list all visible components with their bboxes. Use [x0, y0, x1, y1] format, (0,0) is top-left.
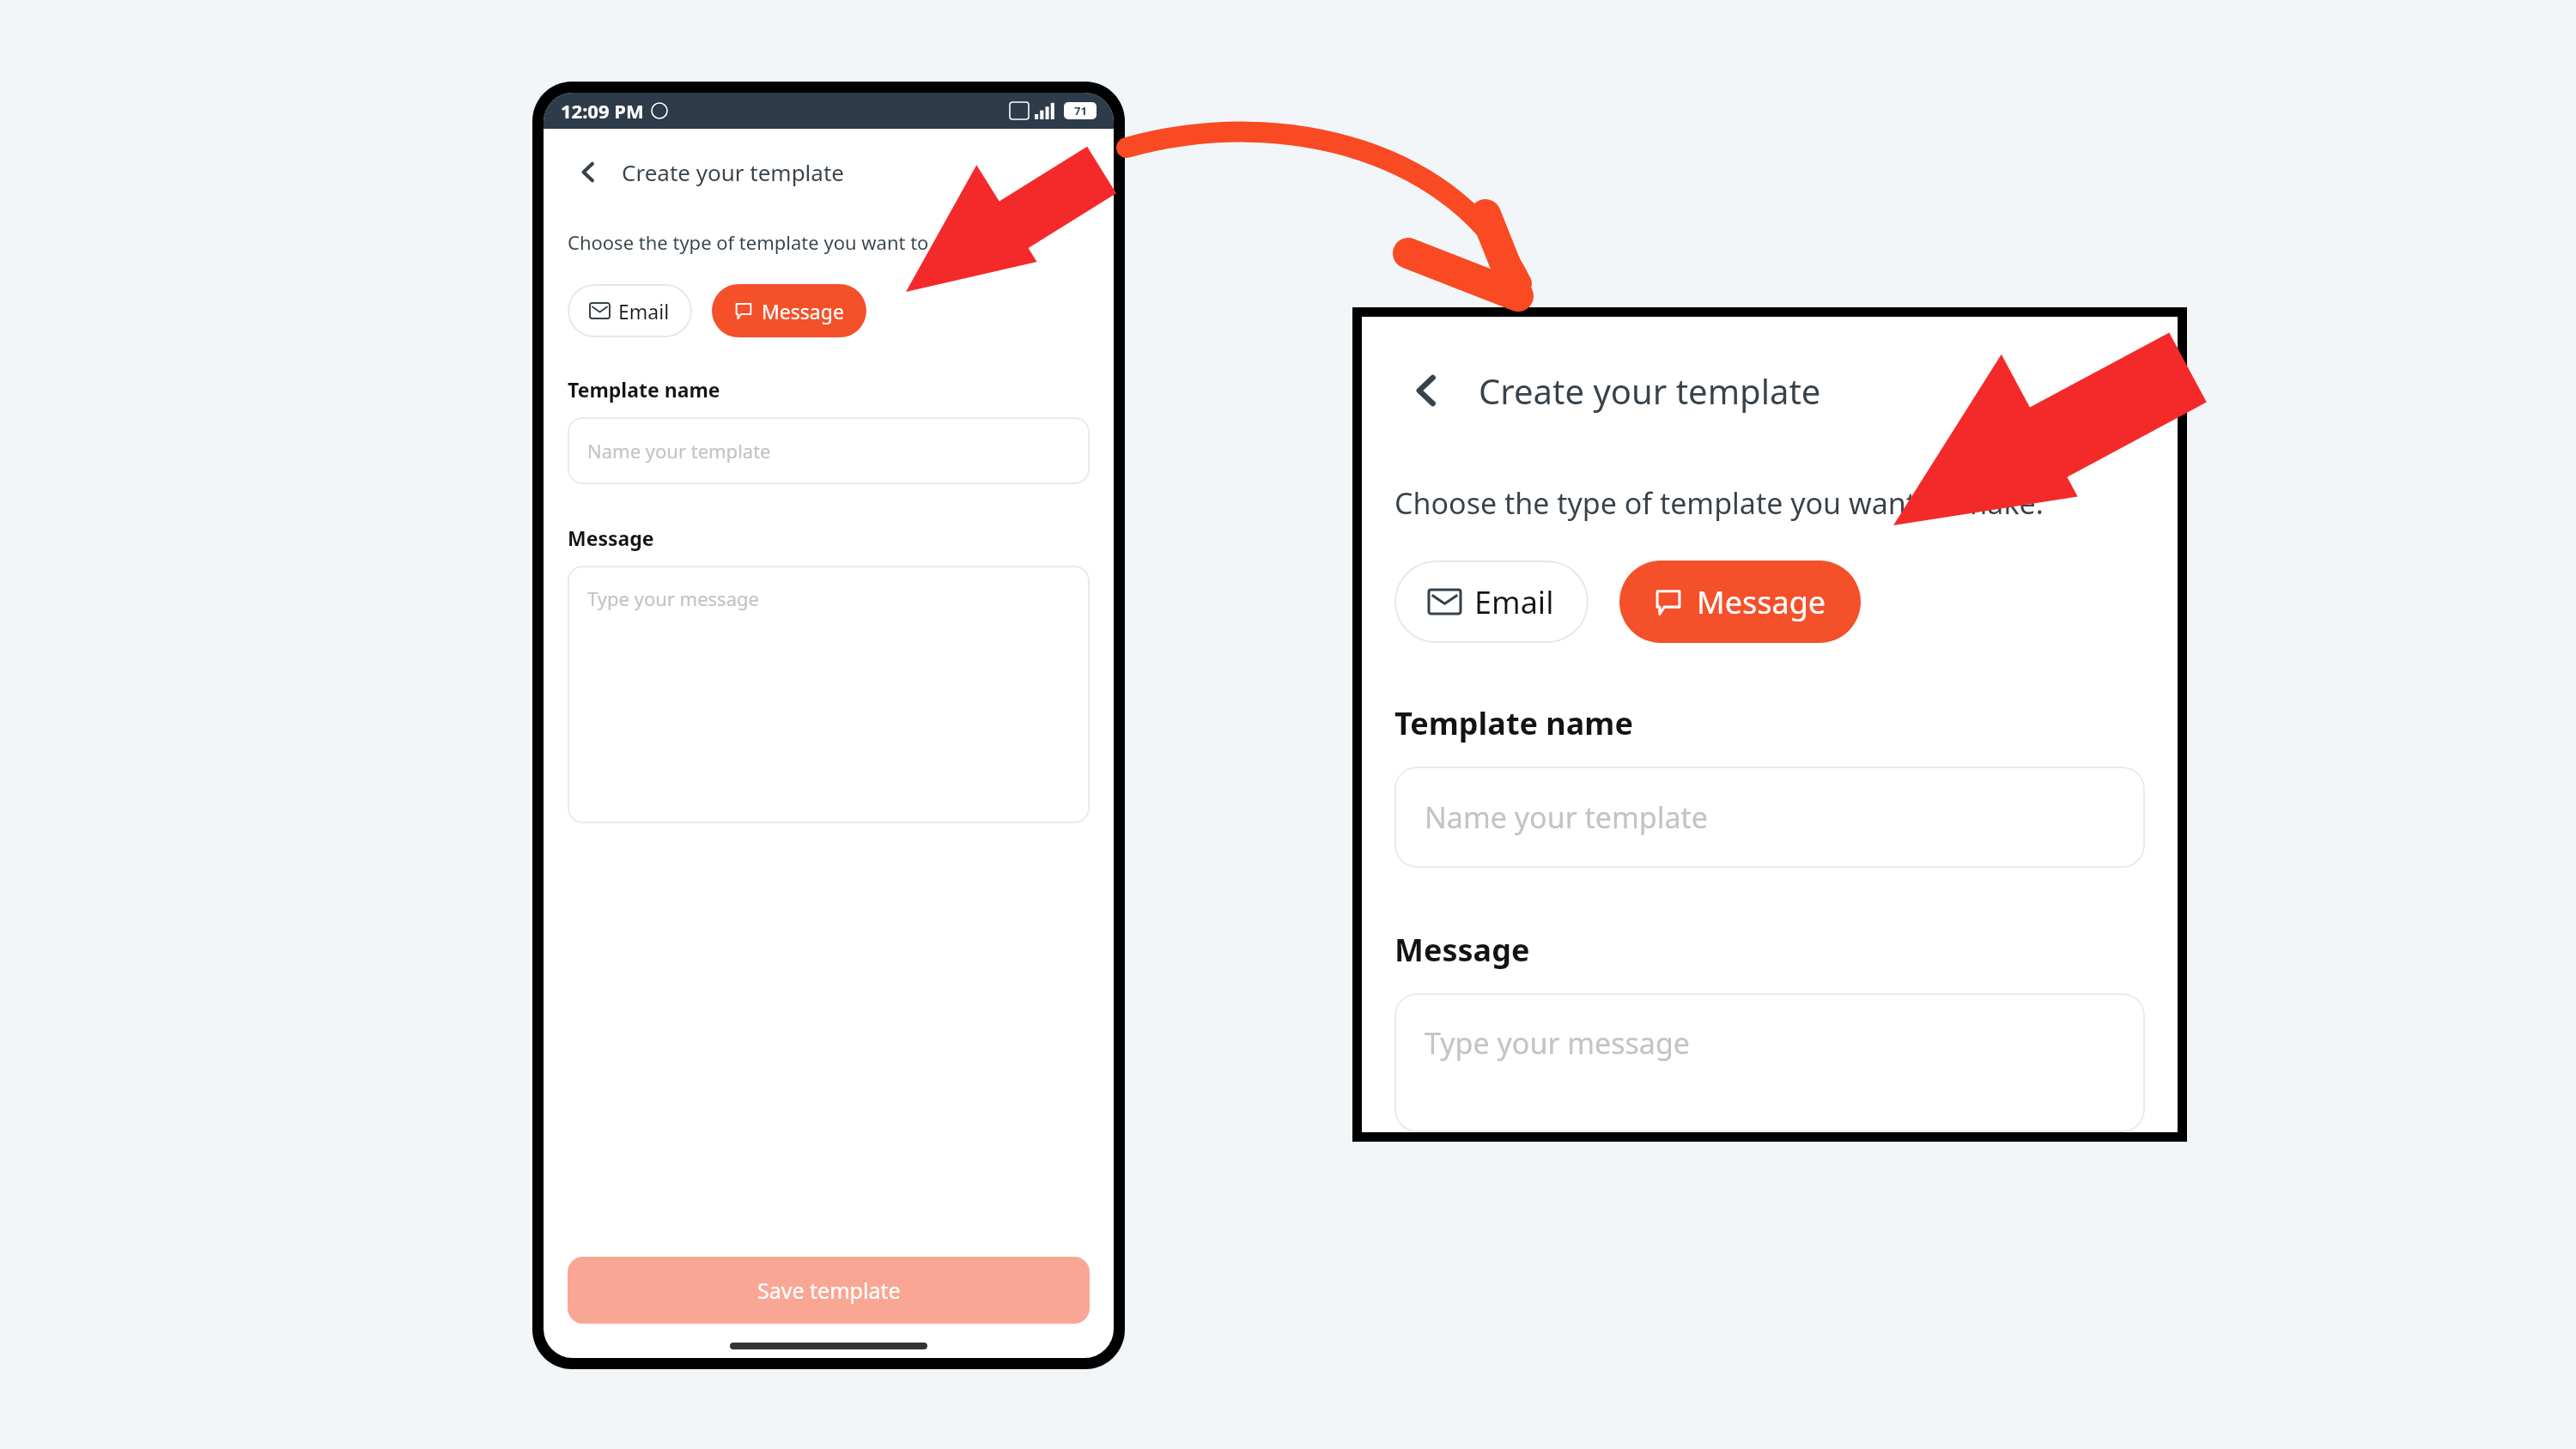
staticText: Message: [1697, 581, 1826, 623]
staticText: Name your template: [587, 438, 771, 464]
button[interactable]: Back: [568, 151, 1090, 193]
staticText: Template name: [568, 376, 720, 403]
staticText: Choose the type of template you want to …: [1394, 483, 2044, 523]
button[interactable]: Back: [1394, 358, 1460, 423]
staticText: Message: [568, 524, 654, 551]
staticText: Email: [618, 298, 670, 324]
button[interactable]: Type your message: [568, 566, 1090, 823]
staticText: Message: [1394, 929, 1530, 971]
staticText: Type your message: [587, 585, 759, 611]
staticText: Template name: [1394, 702, 1633, 744]
staticText: Save template: [757, 1276, 901, 1305]
staticText: Create your template: [1479, 367, 1821, 414]
staticText: Name your template: [1425, 797, 1708, 837]
staticText: Create your template: [622, 157, 844, 187]
button[interactable]: Back: [568, 151, 610, 193]
button[interactable]: Message: [712, 284, 866, 337]
button[interactable]: Email: [568, 284, 692, 337]
staticText: 12:09 PM: [561, 98, 644, 124]
button[interactable]: Email: [1394, 561, 1589, 643]
staticText: Email: [1474, 581, 1554, 623]
button[interactable]: Type your message: [1394, 993, 2145, 1132]
staticText: Choose the type of template you want to …: [568, 229, 988, 255]
staticText: Type your message: [1425, 1023, 1690, 1063]
button[interactable]: Name your template: [568, 417, 1090, 484]
button[interactable]: Save template: [568, 1257, 1090, 1324]
button[interactable]: Message: [1619, 561, 1861, 643]
button[interactable]: Back: [1394, 358, 2145, 423]
button[interactable]: Name your template: [1394, 767, 2145, 868]
staticText: 71: [1074, 103, 1087, 118]
staticText: Message: [762, 298, 844, 324]
